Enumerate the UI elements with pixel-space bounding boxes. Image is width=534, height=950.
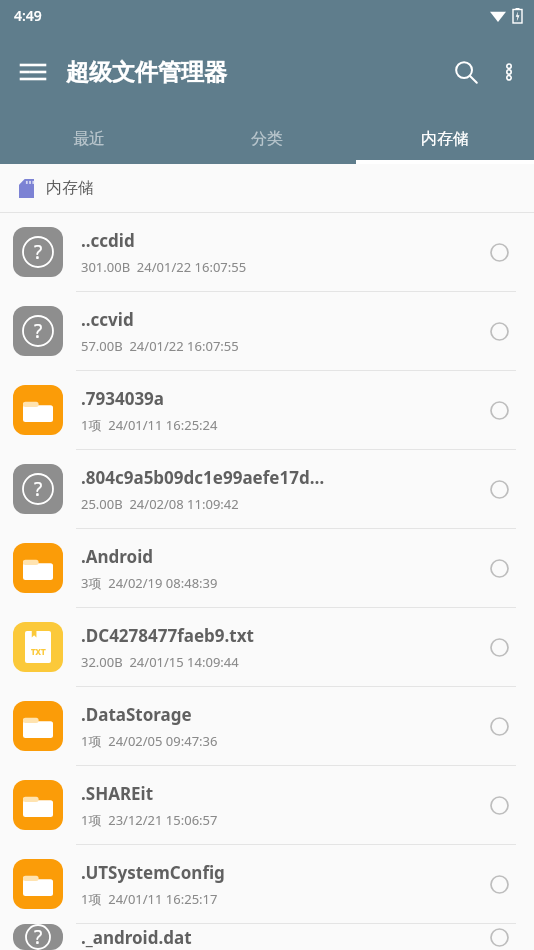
staticText: 内存储 (421, 129, 469, 149)
button[interactable]: .DataStorage (0, 687, 534, 765)
staticText: 内存储 (46, 178, 94, 198)
button[interactable]: 内存储 (356, 114, 534, 164)
staticText: .804c9a5b09dc1e99aefe17d… (81, 466, 325, 489)
button[interactable]: Select (464, 845, 534, 923)
button[interactable]: ? (0, 292, 534, 370)
staticText: TXT (31, 646, 46, 657)
button[interactable]: Select (464, 292, 534, 370)
button[interactable]: 内存储 (0, 164, 534, 212)
staticText: 32.00B 24/01/15 14:09:44 (81, 653, 239, 671)
button[interactable]: .Android (0, 529, 534, 607)
button[interactable]: Select (464, 924, 534, 950)
staticText: .Android (81, 545, 154, 568)
staticText: ? (34, 318, 43, 344)
staticText: 1项 23/12/21 15:06:57 (81, 811, 218, 829)
button[interactable]: Select (464, 608, 534, 686)
staticText: 最近 (73, 129, 105, 149)
button[interactable]: Select (464, 687, 534, 765)
staticText: ..ccdid (81, 229, 135, 252)
button[interactable]: TXT (0, 608, 534, 686)
staticText: ? (34, 239, 43, 265)
staticText: 超级文件管理器 (66, 58, 227, 87)
staticText: 301.00B 24/01/22 16:07:55 (81, 258, 247, 276)
button[interactable]: ? (0, 924, 534, 950)
button[interactable]: Select (464, 766, 534, 844)
staticText: 25.00B 24/02/08 11:09:42 (81, 495, 239, 513)
button[interactable]: 分类 (178, 114, 356, 164)
staticText: 4:49 (14, 6, 42, 25)
button[interactable]: ? (0, 450, 534, 528)
button[interactable]: .UTSystemConfig (0, 845, 534, 923)
staticText: 分类 (251, 129, 283, 149)
button[interactable]: ? (0, 213, 534, 291)
button[interactable]: Select (464, 529, 534, 607)
staticText: 1项 24/01/11 16:25:17 (81, 890, 218, 908)
staticText: 3项 24/02/19 08:48:39 (81, 574, 218, 592)
staticText: .DC4278477faeb9.txt (81, 624, 254, 647)
button[interactable]: Menu (8, 47, 58, 97)
staticText: ._android.dat (81, 926, 192, 949)
staticText: .UTSystemConfig (81, 861, 225, 884)
staticText: ? (34, 476, 43, 502)
staticText: 1项 24/01/11 16:25:24 (81, 416, 218, 434)
button[interactable]: Search (442, 48, 490, 96)
button[interactable]: Select (464, 450, 534, 528)
staticText: ..ccvid (81, 308, 134, 331)
staticText: 1项 24/02/05 09:47:36 (81, 732, 218, 750)
button[interactable]: .7934039a (0, 371, 534, 449)
button[interactable]: Select (464, 213, 534, 291)
staticText: 57.00B 24/01/22 16:07:55 (81, 337, 239, 355)
button[interactable]: More options (490, 50, 528, 94)
button[interactable]: 最近 (0, 114, 178, 164)
button[interactable]: .SHAREit (0, 766, 534, 844)
staticText: .7934039a (81, 387, 165, 410)
button[interactable]: Select (464, 371, 534, 449)
staticText: .SHAREit (81, 782, 154, 805)
staticText: ? (34, 924, 43, 950)
staticText: .DataStorage (81, 703, 192, 726)
